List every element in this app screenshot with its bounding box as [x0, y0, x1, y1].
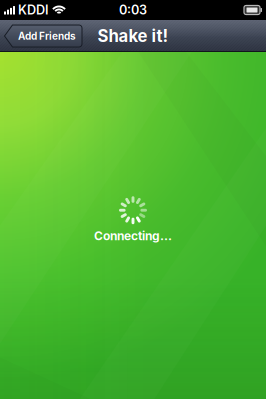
staticText: Shake it!: [97, 26, 168, 46]
button[interactable]: Add Friends: [4, 25, 82, 47]
staticText: Add Friends: [18, 30, 76, 42]
staticText: Connecting...: [94, 229, 172, 243]
staticText: KDDI: [18, 2, 49, 18]
staticText: 0:03: [119, 2, 147, 18]
